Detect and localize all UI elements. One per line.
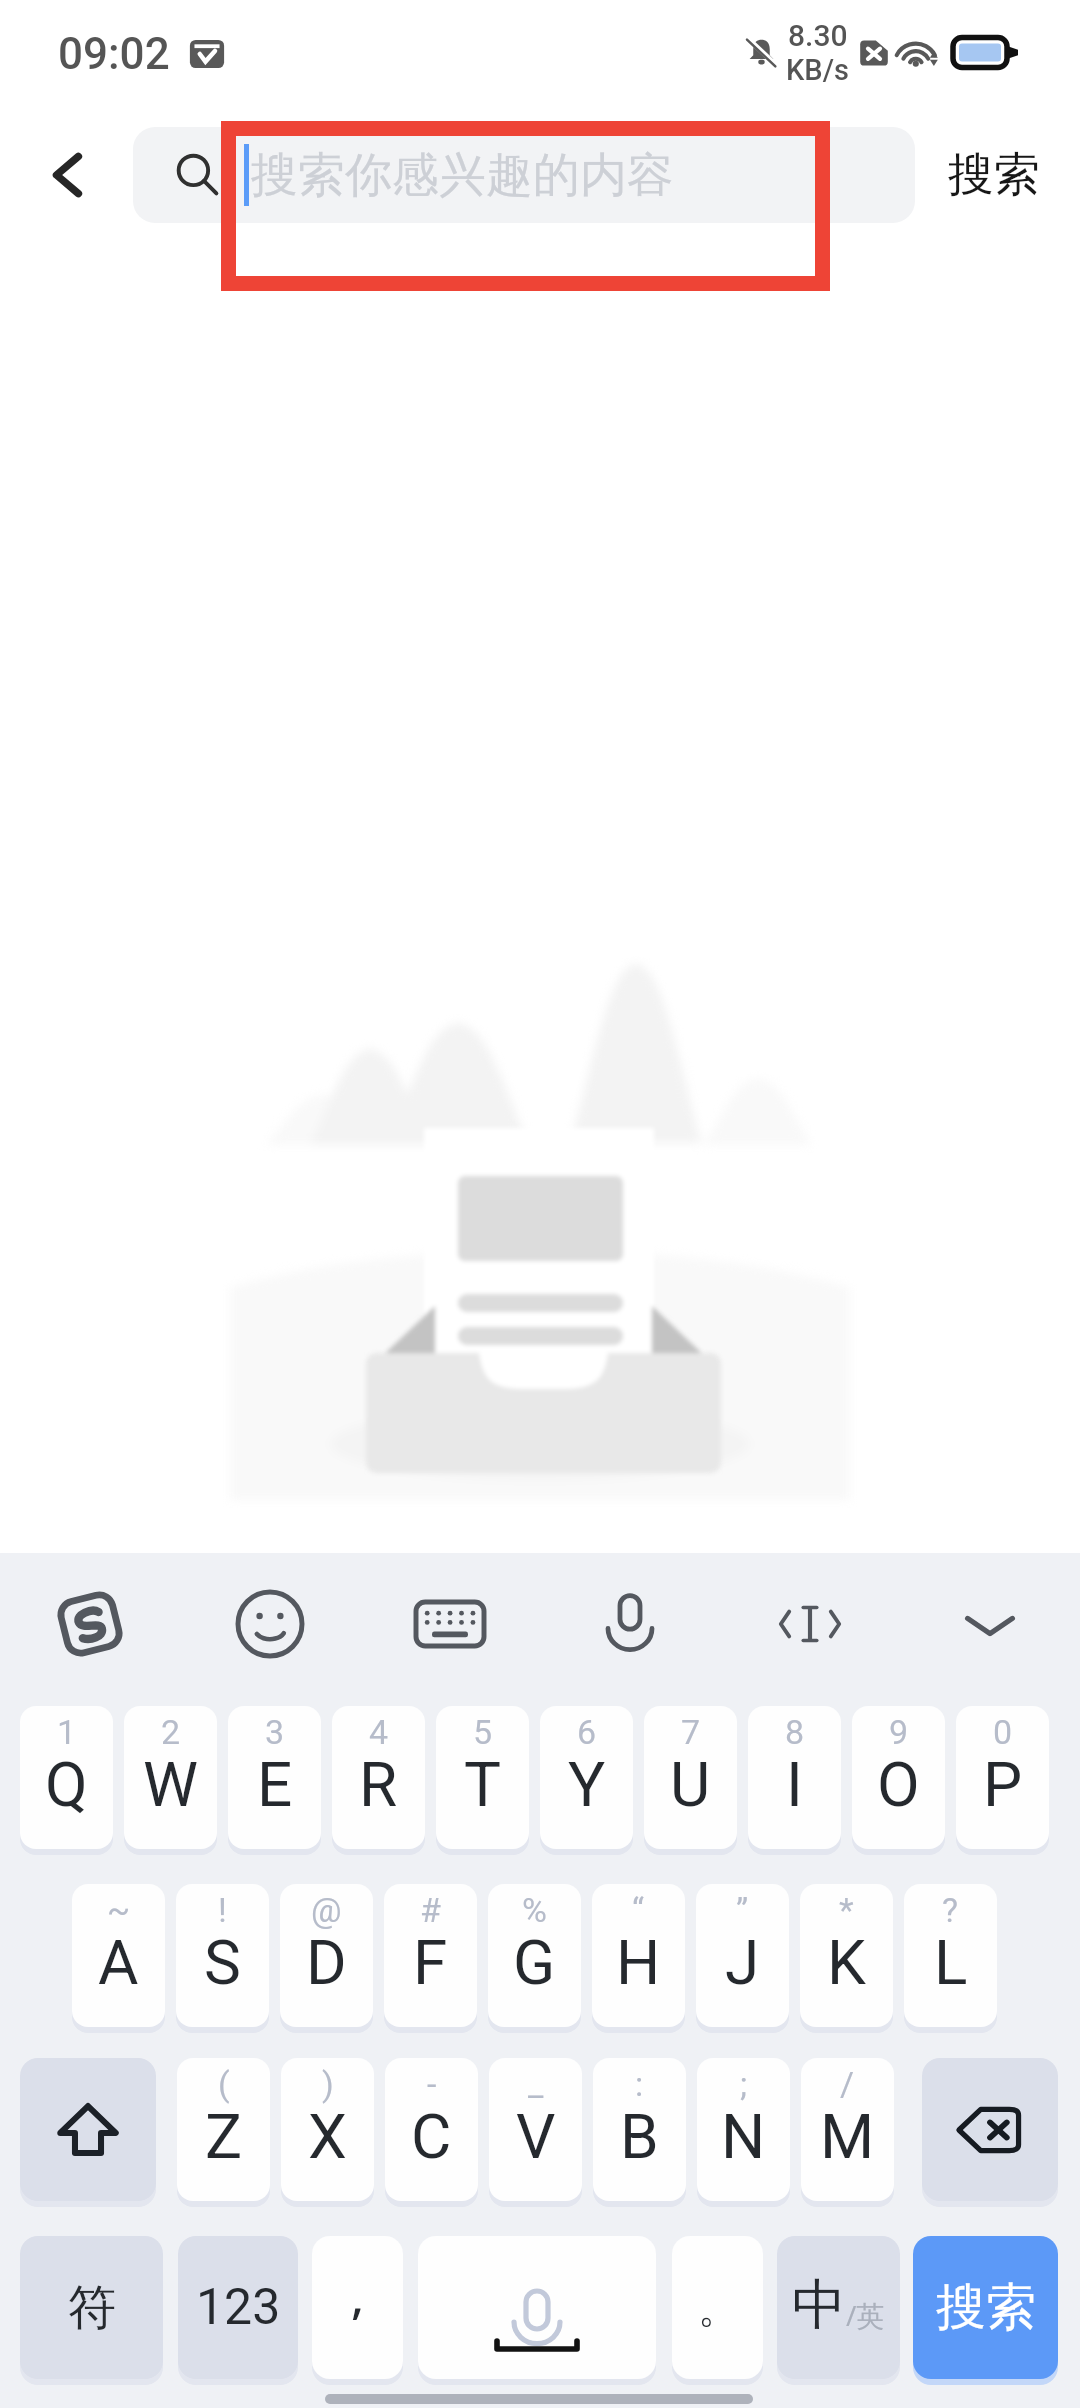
button[interactable]: Move cursor	[720, 1553, 900, 1703]
staticText: 搜索	[936, 2276, 1036, 2339]
button[interactable]: 4	[332, 1706, 425, 1849]
staticText: Z	[205, 2100, 243, 2173]
button[interactable]: 搜索你感兴趣的内容	[133, 127, 915, 223]
button[interactable]: 。	[672, 2236, 763, 2379]
button[interactable]: /	[801, 2058, 894, 2201]
button[interactable]: 7	[644, 1706, 737, 1849]
staticText: (	[218, 2064, 230, 2104]
staticText: 6	[577, 1712, 597, 1752]
button[interactable]: Voice input	[540, 1553, 720, 1703]
staticText: W	[143, 1748, 199, 1821]
staticText: ”	[736, 1890, 749, 1930]
staticText: N	[721, 2100, 766, 2173]
button[interactable]: 0	[956, 1706, 1049, 1849]
button[interactable]: ~	[72, 1884, 165, 2027]
staticText: K	[827, 1926, 866, 1999]
staticText: 123	[196, 2278, 281, 2337]
button[interactable]: 9	[852, 1706, 945, 1849]
button[interactable]: 2	[124, 1706, 217, 1849]
staticText: 8	[785, 1712, 805, 1752]
button[interactable]: 123	[178, 2236, 298, 2379]
staticText: 2	[161, 1712, 181, 1752]
staticText: KB/s	[786, 53, 849, 87]
staticText: ,	[351, 2263, 365, 2328]
button[interactable]: Keyboard layout	[360, 1553, 540, 1703]
staticText: 9	[889, 1712, 909, 1752]
button[interactable]: 中	[777, 2236, 900, 2379]
button[interactable]: ,	[312, 2236, 403, 2379]
button[interactable]: (	[177, 2058, 270, 2201]
button[interactable]: 搜索	[913, 2236, 1058, 2379]
button[interactable]: %	[488, 1884, 581, 2027]
button[interactable]: Emoji	[180, 1553, 360, 1703]
staticText: 5	[473, 1712, 493, 1752]
staticText: D	[306, 1926, 347, 1999]
staticText: 8.30	[788, 18, 848, 53]
staticText: 0	[993, 1712, 1013, 1752]
button[interactable]: *	[800, 1884, 893, 2027]
button[interactable]: Space	[418, 2236, 656, 2379]
staticText: 中	[792, 2271, 846, 2339]
button[interactable]: Back	[8, 125, 126, 225]
staticText: J	[725, 1926, 760, 1999]
button[interactable]: -	[385, 2058, 478, 2201]
button[interactable]: 8	[748, 1706, 841, 1849]
staticText: /英	[846, 2296, 885, 2334]
staticText: S	[204, 1926, 241, 1999]
staticText: :	[635, 2064, 644, 2104]
staticText: V	[516, 2100, 556, 2173]
staticText: F	[413, 1926, 448, 1999]
staticText: U	[670, 1748, 711, 1821]
staticText: Q	[45, 1748, 88, 1821]
staticText: 。	[698, 2283, 738, 2333]
button[interactable]: Shift	[20, 2058, 156, 2201]
staticText: 1	[57, 1712, 77, 1752]
button[interactable]: 符	[20, 2236, 163, 2379]
staticText: “	[632, 1890, 645, 1930]
button[interactable]: _	[489, 2058, 582, 2201]
staticText: P	[983, 1748, 1023, 1821]
staticText: H	[616, 1926, 661, 1999]
button[interactable]: @	[280, 1884, 373, 2027]
staticText: 3	[265, 1712, 285, 1752]
staticText: A	[98, 1926, 139, 1999]
staticText: _	[528, 2064, 544, 2104]
staticText: 09:02	[58, 28, 170, 80]
staticText: I	[786, 1748, 803, 1821]
button[interactable]: !	[176, 1884, 269, 2027]
staticText: 搜索你感兴趣的内容	[251, 146, 674, 205]
staticText: ;	[740, 2064, 748, 2104]
button[interactable]: “	[592, 1884, 685, 2027]
button[interactable]: :	[593, 2058, 686, 2201]
button[interactable]: ?	[904, 1884, 997, 2027]
staticText: C	[411, 2100, 452, 2173]
button[interactable]: Hide keyboard	[900, 1553, 1080, 1703]
staticText: 搜索	[948, 146, 1040, 204]
staticText: E	[257, 1748, 293, 1821]
staticText: %	[522, 1890, 547, 1930]
button[interactable]: 1	[20, 1706, 113, 1849]
button[interactable]: Backspace	[922, 2058, 1058, 2201]
button[interactable]: ;	[697, 2058, 790, 2201]
button[interactable]: )	[281, 2058, 374, 2201]
staticText: @	[311, 1890, 342, 1930]
button[interactable]: 5	[436, 1706, 529, 1849]
staticText: #	[420, 1890, 441, 1930]
staticText: T	[464, 1748, 501, 1821]
staticText: 符	[68, 2278, 116, 2338]
staticText: 7	[681, 1712, 701, 1752]
staticText: -	[427, 2064, 437, 2104]
staticText: 4	[369, 1712, 389, 1752]
button[interactable]: #	[384, 1884, 477, 2027]
staticText: B	[620, 2100, 659, 2173]
staticText: M	[820, 2100, 875, 2173]
button[interactable]: 3	[228, 1706, 321, 1849]
staticText: G	[513, 1926, 556, 1999]
button[interactable]: Sogou input method	[0, 1553, 180, 1703]
staticText: L	[934, 1926, 968, 1999]
staticText: *	[839, 1890, 854, 1930]
staticText: X	[308, 2100, 347, 2173]
button[interactable]: 搜索	[920, 127, 1068, 223]
button[interactable]: 6	[540, 1706, 633, 1849]
button[interactable]: ”	[696, 1884, 789, 2027]
